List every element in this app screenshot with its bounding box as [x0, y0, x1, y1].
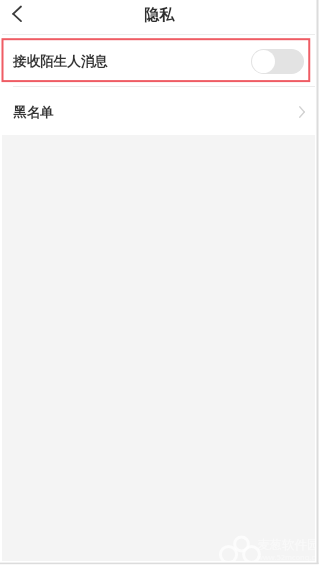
staticText: 接收陌生人消息: [13, 53, 108, 70]
button[interactable]: 黑名单: [2, 87, 315, 135]
staticText: 隐私: [144, 6, 174, 25]
staticText: 麦葱软件园: [257, 537, 320, 553]
button[interactable]: Receive messages from strangers: [251, 49, 304, 74]
button[interactable]: 接收陌生人消息: [2, 35, 315, 87]
staticText: 黑名单: [13, 104, 54, 121]
button[interactable]: Back: [2, 0, 35, 35]
staticText: www.52mcong.com: [257, 552, 320, 562]
